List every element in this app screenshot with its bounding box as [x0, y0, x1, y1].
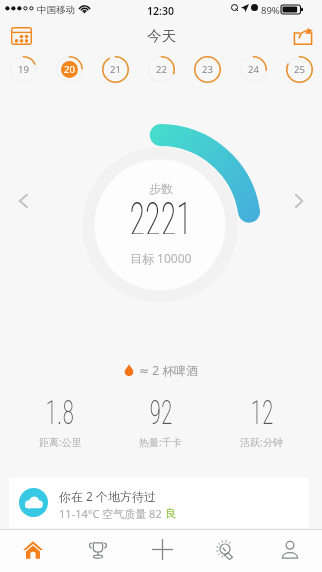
button[interactable]: 1.8 — [10, 394, 110, 450]
staticText: 11-14°C 空气质量 82 — [59, 506, 165, 521]
staticText: 活跃:分钟 — [240, 435, 283, 449]
staticText: 良 — [165, 506, 176, 520]
staticText: 19 — [18, 63, 29, 76]
button[interactable]: Profile — [258, 528, 322, 571]
button[interactable]: Add — [130, 528, 194, 571]
button[interactable]: Next day — [287, 189, 311, 213]
staticText: 21 — [110, 63, 121, 76]
staticText: 步数 — [149, 181, 173, 196]
staticText: 92 — [149, 393, 172, 425]
staticText: 中国移动 — [37, 4, 75, 16]
staticText: 热量:千卡 — [139, 435, 182, 449]
staticText: 12 — [250, 393, 273, 425]
staticText: 23 — [202, 63, 213, 76]
button[interactable]: 22 — [138, 52, 184, 87]
button[interactable]: Home — [0, 528, 65, 571]
staticText: 1.8 — [46, 393, 74, 425]
staticText: 目标 10000 — [130, 250, 192, 266]
staticText: 12:30 — [147, 4, 174, 18]
staticText: 20 — [64, 63, 75, 76]
button[interactable]: Share — [289, 23, 316, 49]
button[interactable]: 23 — [184, 52, 230, 87]
button[interactable]: 21 — [92, 52, 138, 87]
staticText: 89% — [261, 4, 280, 17]
staticText: 25 — [294, 63, 305, 76]
staticText: 22 — [156, 63, 167, 76]
staticText: 今天 — [147, 27, 176, 45]
button[interactable]: 92 — [110, 394, 211, 450]
staticText: ≈ 2 杯啤酒 — [139, 362, 199, 378]
button[interactable]: 12 — [211, 394, 312, 450]
button[interactable]: Achievements — [65, 528, 130, 571]
button[interactable]: Calendar — [6, 23, 36, 49]
button[interactable]: 25 — [276, 52, 322, 87]
button[interactable]: 19 — [0, 52, 46, 87]
button[interactable]: Discover — [194, 528, 258, 571]
button[interactable]: 20 — [46, 52, 92, 87]
button[interactable]: 你在 2 个地方待过 — [9, 478, 309, 528]
staticText: 你在 2 个地方待过 — [59, 488, 157, 504]
button[interactable]: Previous day — [11, 189, 35, 213]
staticText: 24 — [248, 63, 259, 76]
staticText: 距离:公里 — [39, 435, 82, 449]
button[interactable]: 24 — [230, 52, 276, 87]
staticText: 2221 — [129, 192, 192, 234]
